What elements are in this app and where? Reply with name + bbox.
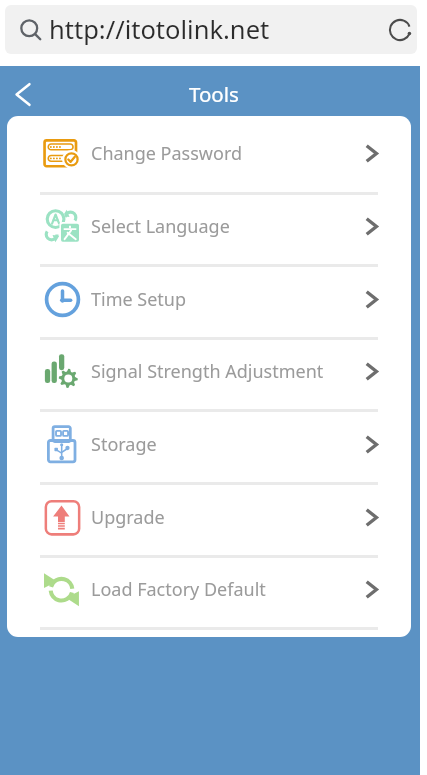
button[interactable]: Back <box>2 73 44 115</box>
staticText: Signal Strength Adjustment <box>91 359 324 384</box>
button[interactable]: Signal Strength Adjustment <box>7 351 411 391</box>
button[interactable]: Reload <box>382 12 417 47</box>
button[interactable]: Upgrade <box>7 497 411 537</box>
staticText: Time Setup <box>91 287 187 312</box>
staticText: Tools <box>189 80 239 108</box>
button[interactable]: Time Setup <box>7 279 411 319</box>
staticText: Upgrade <box>91 505 165 530</box>
staticText: Change Password <box>91 141 243 166</box>
staticText: http://itotolink.net <box>49 12 270 47</box>
staticText: Load Factory Default <box>91 577 266 602</box>
staticText: Storage <box>91 432 157 457</box>
button[interactable]: Load Factory Default <box>7 569 411 609</box>
button[interactable]: Select Language <box>7 206 411 246</box>
button[interactable]: Storage <box>7 424 411 464</box>
button[interactable]: Change Password <box>7 133 411 173</box>
staticText: Select Language <box>91 214 230 239</box>
button[interactable]: http://itotolink.net <box>5 5 417 54</box>
